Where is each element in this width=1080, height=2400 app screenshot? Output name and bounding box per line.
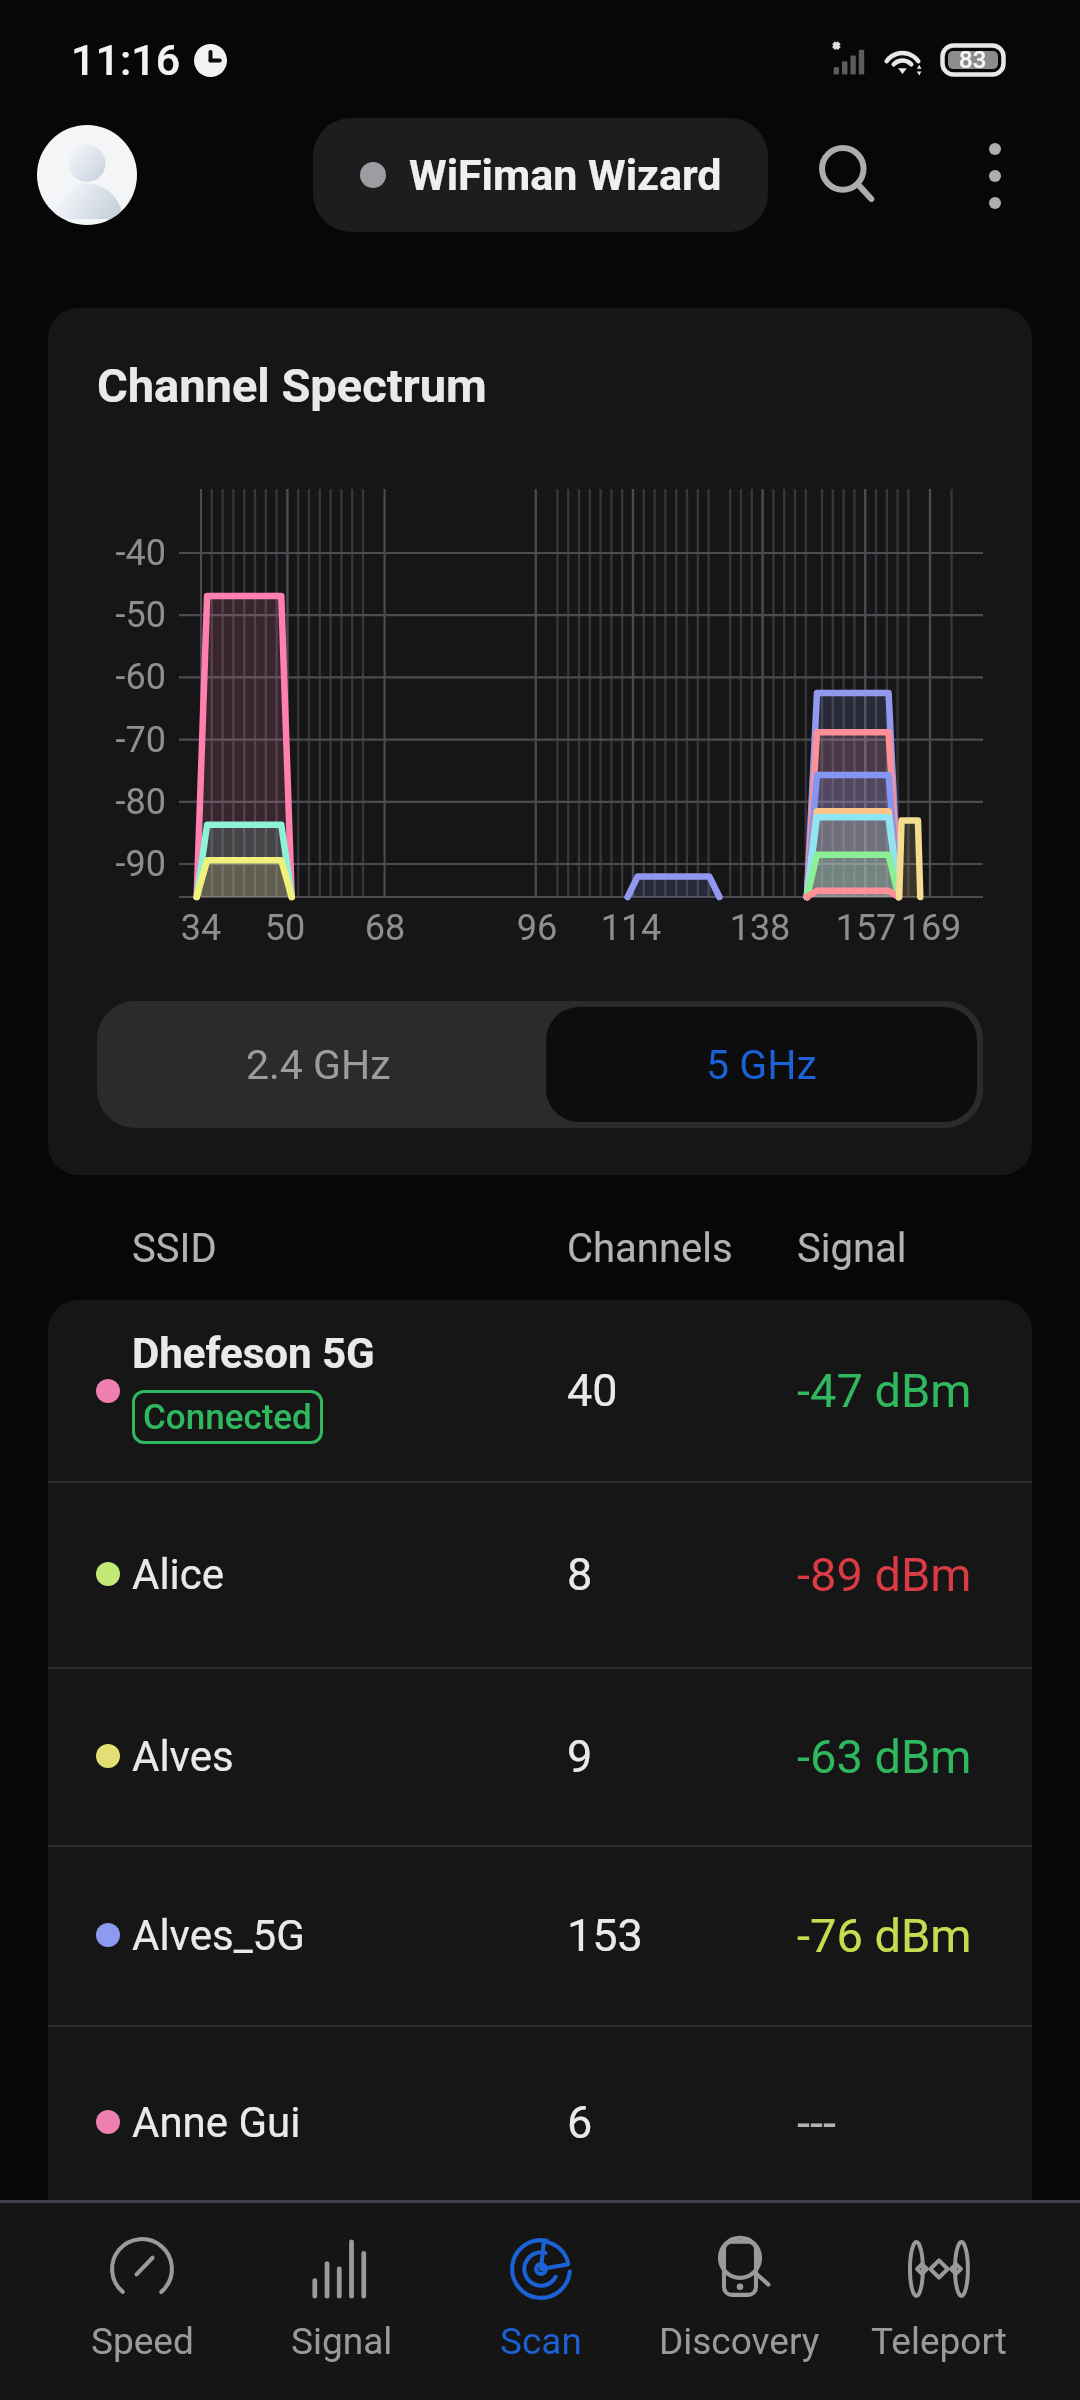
staticText: Alice — [132, 1550, 225, 1599]
staticText: Channels — [567, 1225, 733, 1272]
staticText: 96 — [487, 907, 587, 949]
staticText: -90 — [58, 843, 166, 885]
staticText: 114 — [581, 907, 681, 949]
staticText: 40 — [567, 1364, 618, 1417]
staticText: 11:16 — [71, 35, 181, 85]
staticText: -70 — [58, 719, 166, 761]
staticText: 157 — [816, 907, 916, 949]
button[interactable]: Alves_5G — [48, 1845, 1032, 2025]
staticText: -63 dBm — [797, 1729, 972, 1784]
staticText: Anne Gui — [132, 2098, 301, 2147]
staticText: -40 — [58, 532, 166, 574]
staticText: 5 GHz — [706, 1041, 817, 1089]
button[interactable]: 2.4 GHz — [97, 1001, 540, 1128]
staticText: 138 — [710, 907, 810, 949]
staticText: 169 — [881, 907, 981, 949]
staticText: Channel Spectrum — [97, 358, 487, 413]
staticText: Connected — [143, 1397, 312, 1438]
button[interactable]: Dhefeson 5G — [48, 1300, 1032, 1481]
staticText: -47 dBm — [797, 1363, 972, 1418]
staticText: WiFiman Wizard — [409, 150, 722, 200]
staticText: Scan — [500, 2320, 582, 2363]
button[interactable]: Anne Gui — [48, 2025, 1032, 2219]
staticText: 83 — [959, 46, 987, 74]
button[interactable]: Search — [799, 126, 899, 226]
staticText: Signal — [797, 1225, 907, 1272]
staticText: Speed — [91, 2320, 194, 2363]
staticText: Teleport — [871, 2320, 1007, 2363]
staticText: -76 dBm — [797, 1908, 972, 1963]
staticText: Dhefeson 5G — [132, 1329, 375, 1378]
button[interactable]: Alice — [48, 1481, 1032, 1667]
button[interactable]: Alves — [48, 1667, 1032, 1845]
button[interactable]: Speed — [42, 2203, 242, 2400]
staticText: Discovery — [659, 2320, 820, 2363]
button[interactable]: WiFiman Wizard — [313, 118, 768, 232]
button[interactable]: Discovery — [640, 2203, 839, 2400]
staticText: Alves — [132, 1732, 234, 1781]
staticText: 9 — [567, 1730, 593, 1783]
staticText: 34 — [151, 907, 251, 949]
button[interactable]: 5 GHz — [546, 1007, 977, 1122]
button[interactable]: Teleport — [839, 2203, 1038, 2400]
staticText: 8 — [567, 1548, 593, 1601]
staticText: 50 — [235, 907, 335, 949]
staticText: 6 — [567, 2096, 593, 2149]
staticText: -80 — [58, 781, 166, 823]
staticText: 2.4 GHz — [246, 1041, 391, 1089]
staticText: 68 — [335, 907, 435, 949]
staticText: Signal — [291, 2320, 393, 2363]
staticText: Alves_5G — [132, 1911, 305, 1960]
staticText: -60 — [58, 656, 166, 698]
button[interactable]: Scan — [441, 2203, 640, 2400]
staticText: -50 — [58, 594, 166, 636]
button[interactable]: Profile — [37, 125, 137, 225]
staticText: -89 dBm — [797, 1547, 972, 1602]
staticText: --- — [797, 2095, 836, 2150]
staticText: SSID — [132, 1225, 217, 1272]
staticText: 153 — [567, 1909, 643, 1962]
button[interactable]: Signal — [242, 2203, 441, 2400]
button[interactable]: More options — [945, 126, 1045, 226]
